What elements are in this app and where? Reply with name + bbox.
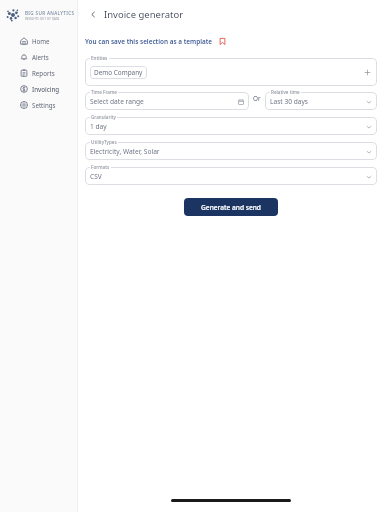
button[interactable]: Invoicing [0,81,78,97]
button[interactable]: Home [0,33,78,49]
button[interactable]: Reports [0,65,78,81]
other: Open CSV options [364,172,373,181]
button[interactable]: Electricity, Water, Solar [85,142,377,160]
staticText: Settings [32,101,56,109]
button[interactable]: CSV [85,167,377,185]
staticText: Last 30 days [270,97,308,106]
button[interactable]: Add entity [362,67,372,77]
staticText: Electricity, Water, Solar [90,147,160,156]
staticText: UtilityTypes [91,139,117,145]
staticText: Granularity [91,114,116,120]
staticText: Select date range [90,97,144,106]
other: Open Electricity, Water, Solar options [364,147,373,156]
staticText: Relative time [271,89,300,95]
button[interactable]: Demo Company [90,66,147,79]
button[interactable]: You can save this selection as a templat… [85,37,227,46]
button[interactable]: Settings [0,97,78,113]
staticText: Time Frame [91,89,117,95]
staticText: 1 day [90,122,107,131]
staticText: You can save this selection as a templat… [85,37,213,46]
staticText: Alerts [32,53,49,61]
staticText: Or [253,94,261,103]
staticText: BIG SUR ANALYTICS [25,10,75,16]
staticText: Entities [91,55,108,61]
other: Open 1 day options [364,122,373,131]
button[interactable]: Generate and send [184,198,278,216]
staticText: Reports [32,69,55,77]
staticText: Demo Company [94,68,143,77]
other: Open Last 30 days options [364,97,373,106]
button[interactable]: Demo Company [85,58,377,86]
button[interactable]: Alerts [0,49,78,65]
staticText: CSV [90,172,102,181]
staticText: Invoicing [32,85,60,93]
other: Pick dates [236,97,245,106]
button[interactable]: Select date range [85,92,249,110]
button[interactable]: Back [86,7,100,21]
staticText: Formats [91,164,110,170]
button[interactable]: 1 day [85,117,377,135]
staticText: Invoice generator [104,8,184,21]
staticText: INSIGHTS OUT OF DATA [25,17,60,21]
button[interactable]: Last 30 days [265,92,377,110]
other: Save template [218,37,227,46]
staticText: Home [32,37,50,45]
staticText: Generate and send [201,203,261,212]
